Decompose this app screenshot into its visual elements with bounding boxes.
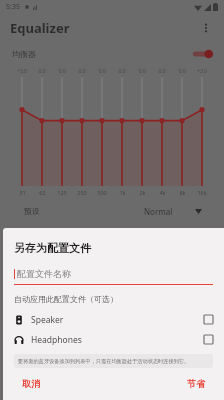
staticText: 0.0 bbox=[78, 68, 86, 75]
button[interactable]: 取消 bbox=[14, 374, 48, 393]
staticText: 取消 bbox=[22, 378, 40, 389]
staticText: 8k bbox=[179, 189, 186, 196]
button[interactable]: Speaker bbox=[14, 311, 213, 328]
staticText: 1k bbox=[119, 189, 126, 196]
staticText: 0.0 bbox=[178, 68, 186, 75]
staticText: Headphones bbox=[31, 334, 82, 346]
staticText: 要将新的蓝牙设备添加到列表中，只需在均衡器处于活动状态时连接到它。 bbox=[18, 358, 190, 365]
button[interactable]: 配置文件名称 bbox=[14, 268, 213, 285]
staticText: Speaker bbox=[31, 314, 64, 326]
staticText: 4k bbox=[159, 189, 166, 196]
staticText: 0.0 bbox=[158, 68, 166, 75]
staticText: 自动应用此配置文件（可选） bbox=[14, 294, 118, 304]
staticText: 配置文件名称 bbox=[17, 268, 71, 279]
staticText: 0.0 bbox=[118, 68, 126, 75]
staticText: 0.0 bbox=[58, 68, 66, 75]
staticText: Normal bbox=[144, 206, 173, 217]
staticText: 另存为配置文件 bbox=[14, 241, 91, 255]
staticText: 0.0 bbox=[98, 68, 106, 75]
staticText: 125 bbox=[57, 189, 67, 196]
staticText: 0.0 bbox=[138, 68, 146, 75]
button[interactable]: 节省 bbox=[179, 374, 213, 393]
staticText: +3.0 bbox=[17, 68, 27, 75]
staticText: 250 bbox=[77, 189, 87, 196]
staticText: 5:35 bbox=[6, 2, 20, 12]
staticText: 31 bbox=[19, 189, 26, 196]
button[interactable]: Normal bbox=[142, 206, 204, 217]
staticText: 2k bbox=[139, 189, 146, 196]
staticText: 节省 bbox=[187, 378, 205, 389]
button[interactable]: 均衡器 bbox=[12, 45, 214, 63]
staticText: 0.0 bbox=[38, 68, 46, 75]
staticText: 62 bbox=[39, 189, 46, 196]
button[interactable]: More options bbox=[194, 16, 218, 40]
button[interactable]: Headphones bbox=[14, 331, 213, 348]
staticText: 均衡器 bbox=[12, 49, 36, 59]
staticText: 16k bbox=[197, 189, 207, 196]
staticText: Equalizer bbox=[10, 19, 70, 37]
staticText: 预设 bbox=[24, 206, 40, 216]
staticText: 500 bbox=[97, 189, 107, 196]
staticText: +3.0 bbox=[197, 68, 207, 75]
